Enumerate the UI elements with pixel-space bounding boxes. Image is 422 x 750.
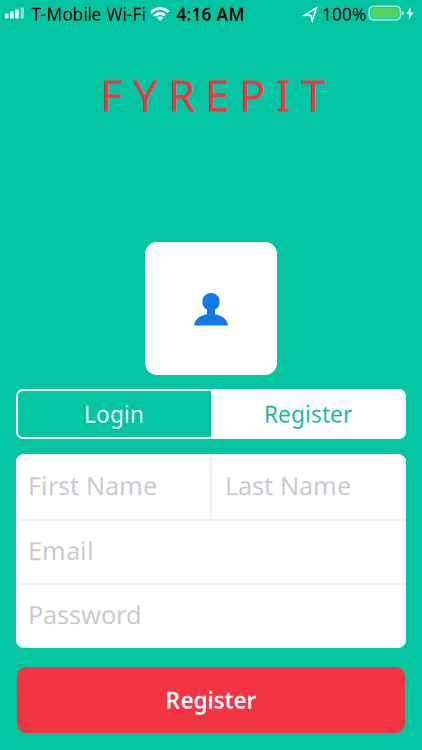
button[interactable]: Add profile photo xyxy=(145,242,277,375)
staticText: Register xyxy=(165,685,256,715)
staticText: Email xyxy=(28,534,94,567)
staticText: Last Name xyxy=(225,469,351,502)
button[interactable]: Email xyxy=(16,518,406,582)
staticText: First Name xyxy=(28,469,157,502)
button[interactable]: First Name xyxy=(18,452,213,518)
button[interactable]: Login xyxy=(17,390,211,438)
button[interactable]: Password xyxy=(16,582,406,646)
staticText: 100% xyxy=(322,2,366,25)
staticText: FYREPIT xyxy=(100,65,325,124)
button[interactable]: Register xyxy=(211,390,405,438)
staticText: Password xyxy=(28,598,142,631)
staticText: Register xyxy=(264,399,352,429)
staticText: 4:16 AM xyxy=(176,2,244,25)
staticText: T-Mobile Wi-Fi xyxy=(31,2,145,25)
button[interactable]: Last Name xyxy=(213,452,408,518)
staticText: Login xyxy=(84,399,144,429)
button[interactable]: Register xyxy=(17,667,405,733)
